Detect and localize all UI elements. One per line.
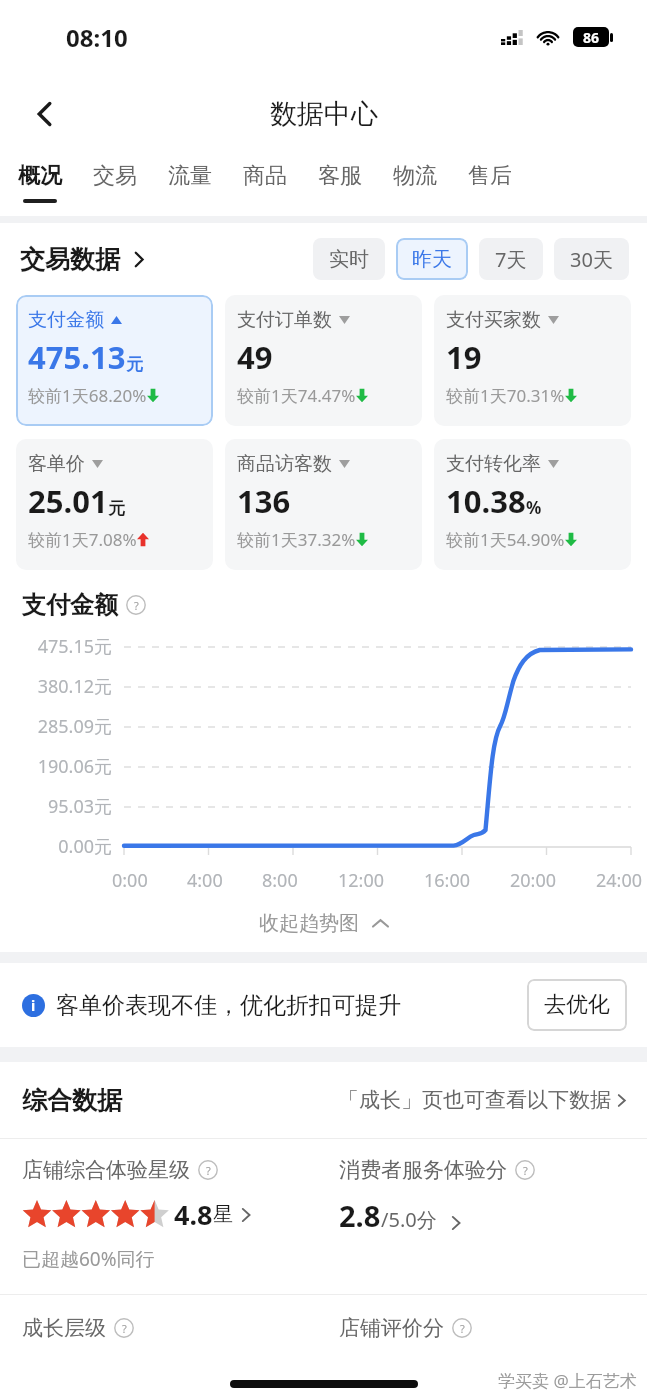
staticText: 元: [126, 354, 143, 375]
staticText: /5.0分: [381, 1206, 437, 1233]
staticText: 8:00: [262, 868, 298, 893]
staticText: 10.38: [446, 480, 526, 522]
staticText: 物流: [393, 162, 437, 190]
staticText: 店铺综合体验星级: [22, 1157, 190, 1183]
button[interactable]: 支付买家数: [434, 295, 631, 426]
button[interactable]: 2.8: [339, 1196, 464, 1235]
staticText: 支付转化率: [446, 452, 541, 476]
button[interactable]: 收起趋势图: [0, 907, 647, 940]
staticText: 19: [446, 336, 482, 378]
staticText: 0.00元: [2, 834, 112, 859]
staticText: 24:00: [596, 868, 643, 893]
staticText: 25.01: [28, 480, 108, 522]
button[interactable]: 客服: [318, 154, 362, 199]
staticText: 较前1天7.08%: [28, 528, 137, 551]
staticText: 商品访客数: [237, 452, 332, 476]
staticText: 380.12元: [2, 674, 112, 699]
staticText: 支付金额: [28, 308, 104, 332]
staticText: 475.15元: [2, 634, 112, 659]
staticText: 星: [213, 1202, 233, 1227]
staticText: 交易: [93, 162, 137, 190]
staticText: 收起趋势图: [259, 911, 359, 936]
staticText: 285.09元: [2, 714, 112, 739]
staticText: 店铺评价分: [339, 1315, 444, 1341]
staticText: 较前1天70.31%: [446, 384, 565, 407]
staticText: 190.06元: [2, 754, 112, 779]
button[interactable]: 物流: [393, 154, 437, 199]
button[interactable]: 昨天: [396, 238, 468, 280]
button[interactable]: 7天: [479, 238, 543, 280]
staticText: 2.8: [339, 1196, 381, 1235]
button[interactable]: 支付订单数: [225, 295, 422, 426]
button[interactable]: 去优化: [527, 979, 627, 1031]
staticText: ?: [134, 598, 139, 613]
staticText: 较前1天74.47%: [237, 384, 356, 407]
button[interactable]: 支付金额: [16, 295, 213, 426]
staticText: 7天: [495, 246, 527, 273]
staticText: 12:00: [338, 868, 385, 893]
staticText: 较前1天68.20%: [28, 384, 147, 407]
staticText: ?: [206, 1163, 211, 1178]
staticText: 0:00: [112, 868, 148, 893]
staticText: 较前1天54.90%: [446, 528, 565, 551]
button[interactable]: 售后: [468, 154, 512, 199]
staticText: ?: [523, 1163, 528, 1178]
staticText: 136: [237, 480, 291, 522]
staticText: 16:00: [424, 868, 471, 893]
staticText: 支付订单数: [237, 308, 332, 332]
button[interactable]: 实时: [313, 238, 385, 280]
staticText: 流量: [168, 162, 212, 190]
staticText: 4.8: [174, 1196, 213, 1233]
button[interactable]: 支付转化率: [434, 439, 631, 570]
staticText: 20:00: [510, 868, 557, 893]
staticText: 08:10: [66, 21, 128, 54]
button[interactable]: 交易: [93, 154, 137, 199]
staticText: 售后: [468, 162, 512, 190]
staticText: 95.03元: [2, 794, 112, 819]
staticText: 49: [237, 336, 273, 378]
staticText: 86: [583, 28, 600, 47]
staticText: 较前1天37.32%: [237, 528, 356, 551]
button[interactable]: 交易数据: [20, 244, 147, 275]
button[interactable]: 商品访客数: [225, 439, 422, 570]
staticText: 「成长」页也可查看以下数据: [338, 1087, 611, 1113]
button[interactable]: 概况: [18, 154, 62, 203]
button[interactable]: 流量: [168, 154, 212, 199]
staticText: 商品: [243, 162, 287, 190]
staticText: 客服: [318, 162, 362, 190]
staticText: 元: [108, 498, 125, 519]
staticText: 已超越60%同行: [22, 1246, 155, 1272]
staticText: ?: [460, 1321, 465, 1336]
staticText: 昨天: [412, 247, 452, 272]
staticText: i: [31, 996, 36, 1015]
staticText: 交易数据: [20, 244, 120, 275]
button[interactable]: Back: [20, 89, 70, 139]
button[interactable]: 客单价: [16, 439, 213, 570]
staticText: 475.13: [28, 336, 126, 378]
staticText: 客单价表现不佳，优化折扣可提升: [56, 991, 401, 1020]
staticText: 实时: [329, 247, 369, 272]
staticText: 消费者服务体验分: [339, 1157, 507, 1183]
staticText: %: [526, 496, 542, 519]
button[interactable]: 「成长」页也可查看以下数据: [338, 1087, 629, 1113]
staticText: 成长层级: [22, 1315, 106, 1341]
button[interactable]: 30天: [554, 238, 629, 280]
staticText: 数据中心: [270, 97, 378, 131]
staticText: 支付买家数: [446, 308, 541, 332]
staticText: 去优化: [544, 991, 610, 1019]
button[interactable]: 商品: [243, 154, 287, 199]
staticText: 客单价: [28, 452, 85, 476]
staticText: 综合数据: [22, 1085, 122, 1116]
staticText: 支付金额: [22, 590, 118, 620]
staticText: 30天: [570, 246, 613, 273]
staticText: 学买卖 @上石艺术: [498, 1369, 637, 1392]
staticText: 概况: [18, 162, 62, 190]
button[interactable]: 4.8: [22, 1196, 254, 1233]
staticText: ?: [122, 1321, 127, 1336]
staticText: 4:00: [187, 868, 223, 893]
